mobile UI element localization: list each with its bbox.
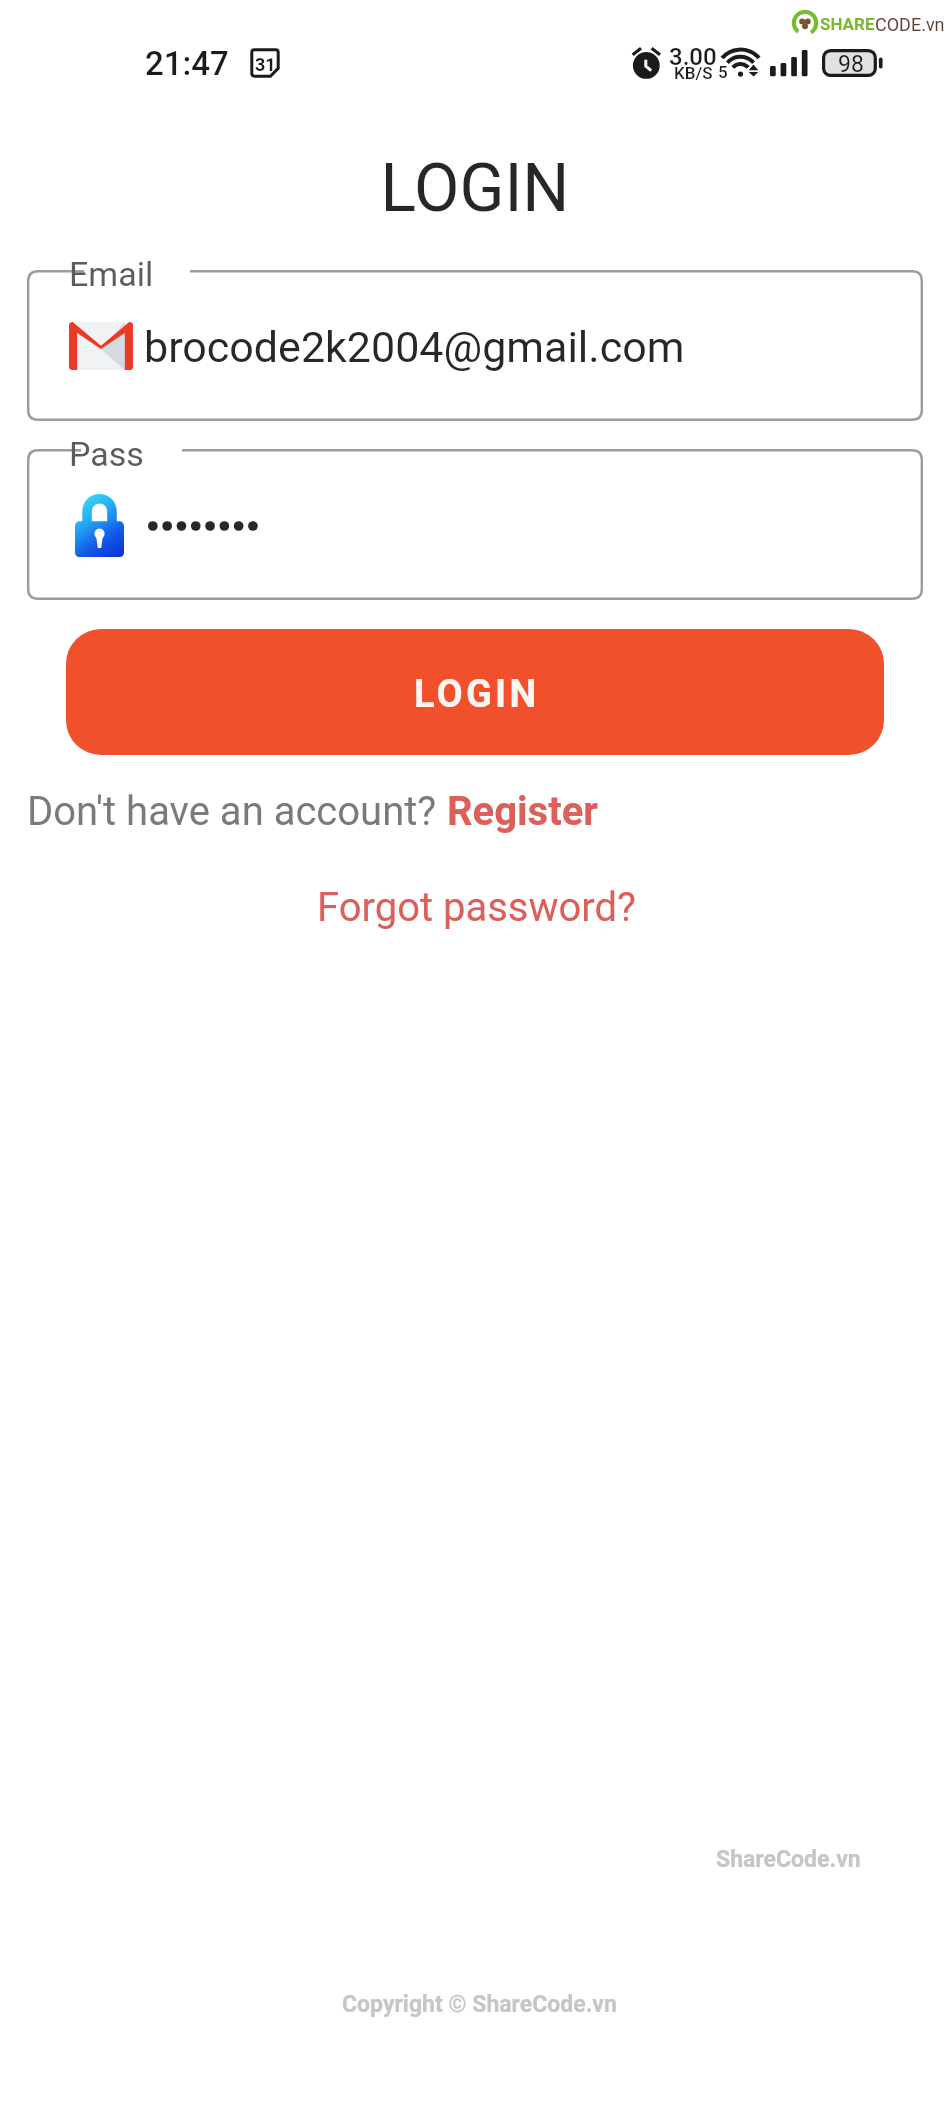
staticText: 21:47 <box>145 44 229 83</box>
staticText: SHARE <box>820 14 875 34</box>
staticText: Don't have an account? <box>27 788 447 835</box>
staticText: 98 <box>838 51 864 78</box>
staticText: Copyright © ShareCode.vn <box>342 1991 617 2018</box>
staticText: 31 <box>255 54 276 75</box>
staticText: CODE.vn <box>875 14 945 35</box>
staticText: KB/S <box>674 63 713 83</box>
button[interactable] <box>27 449 923 600</box>
staticText: Register <box>447 788 598 835</box>
staticText: Forgot password? <box>317 884 637 931</box>
staticText: ShareCode.vn <box>716 1846 861 1873</box>
staticText: brocode2k2004@gmail.com <box>144 322 685 372</box>
button[interactable]: Register <box>447 788 598 835</box>
button[interactable]: LOGIN <box>66 629 884 755</box>
button[interactable]: Forgot password? <box>317 884 637 931</box>
staticText: LOGIN <box>414 672 540 717</box>
staticText: 5 <box>718 62 728 82</box>
staticText: Pass <box>69 434 144 474</box>
staticText: LOGIN <box>0 150 950 227</box>
button[interactable]: brocode2k2004@gmail.com <box>27 270 923 421</box>
staticText: 3.00 <box>669 43 717 71</box>
staticText: Email <box>69 254 154 294</box>
other: Calendar <box>250 48 280 78</box>
